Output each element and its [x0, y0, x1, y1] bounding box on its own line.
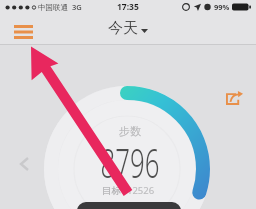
staticText: 目标	[102, 185, 121, 197]
button[interactable]	[77, 202, 181, 209]
staticText: 99%	[214, 2, 230, 12]
button[interactable]: 今天	[108, 19, 148, 38]
staticText: 今天	[108, 19, 138, 38]
staticText: 12526	[127, 184, 155, 197]
staticText: 17:35	[117, 1, 139, 13]
button[interactable]: Previous day	[13, 153, 35, 175]
button[interactable]: Menu	[9, 18, 37, 46]
staticText: 3G	[72, 2, 82, 12]
staticText: 步数	[119, 124, 141, 138]
button[interactable]: Share	[223, 86, 246, 109]
staticText: 中国联通	[38, 3, 68, 12]
staticText: 8796	[100, 134, 160, 190]
